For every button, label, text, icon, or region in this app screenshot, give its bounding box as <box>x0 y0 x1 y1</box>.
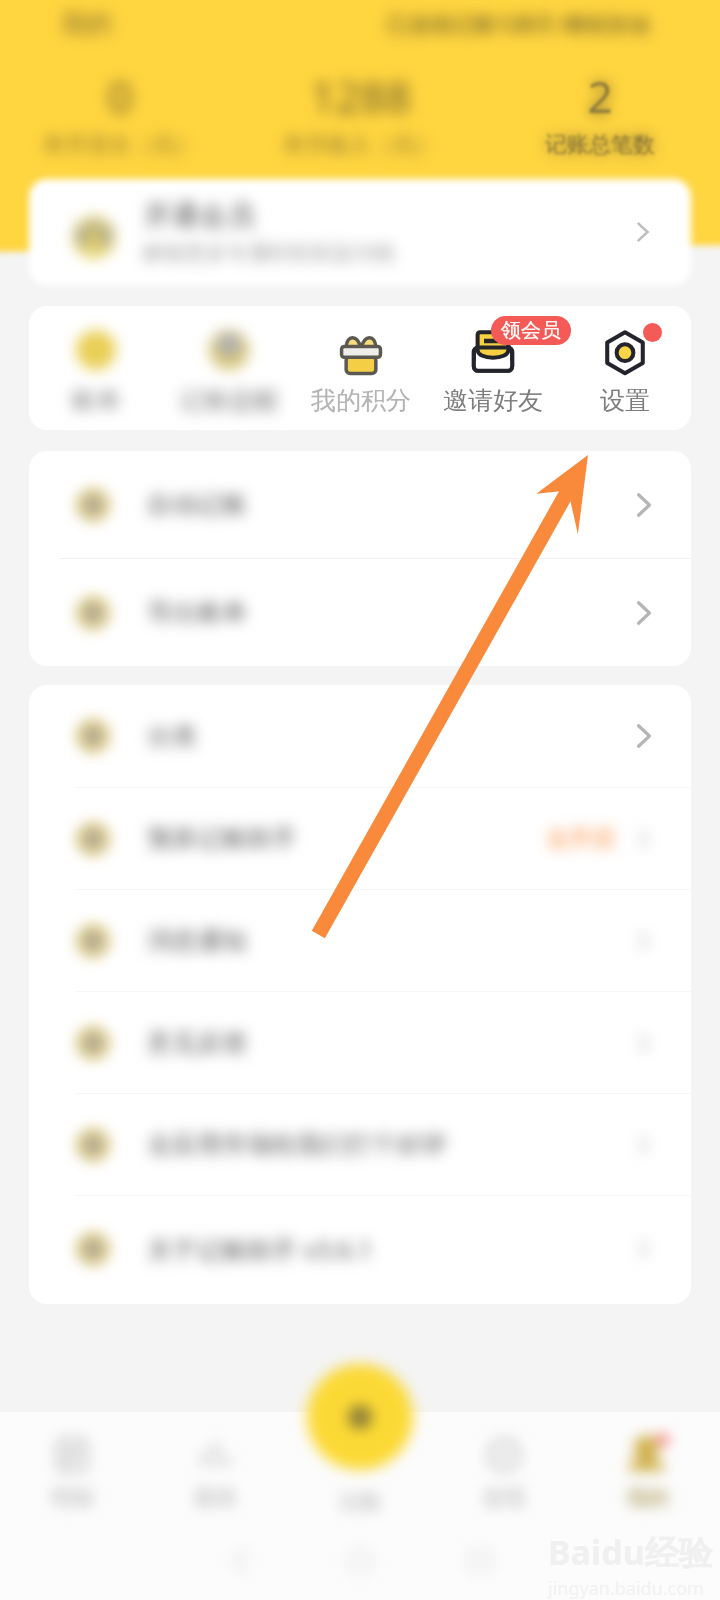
staticText: 明细 <box>51 1485 93 1511</box>
staticText: 2 <box>587 66 613 126</box>
button[interactable]: 我的 <box>576 1424 720 1511</box>
staticText: 领会员 <box>501 318 561 343</box>
staticText: 记账总笔数 <box>545 131 655 159</box>
staticText: Baidu经验 <box>548 1529 713 1575</box>
staticText: 0 <box>107 66 133 126</box>
staticText: 自动记账 <box>147 489 247 520</box>
staticText: 本月支出（元） <box>43 131 197 159</box>
button[interactable]: 消息通知 <box>29 890 691 991</box>
staticText: 去应用市场给我们打个好评 <box>147 1129 447 1160</box>
staticText: 记账提醒 <box>179 385 279 416</box>
staticText: 开通会员 <box>143 198 255 233</box>
button[interactable]: 预算记账助手 <box>29 788 691 889</box>
button[interactable]: 明细 <box>0 1424 144 1511</box>
button[interactable]: 图表 <box>144 1424 288 1511</box>
button[interactable]: 自动记账 <box>29 451 691 558</box>
staticText: 关于记账助手 v3.6.1 <box>147 1232 373 1266</box>
staticText: 发现 <box>483 1485 525 1511</box>
button[interactable]: 意见反馈 <box>29 992 691 1093</box>
button[interactable]: 关于记账助手 v3.6.1 <box>29 1196 691 1302</box>
staticText: 本月收入（元） <box>283 131 437 159</box>
staticText: 导出账单 <box>147 597 247 628</box>
staticText: 记账总笔数 <box>545 131 655 159</box>
staticText: 1288 <box>310 66 411 126</box>
button[interactable]: 我的积分 <box>295 306 427 430</box>
staticText: 去开启 <box>546 824 615 853</box>
staticText: 图表 <box>195 1485 237 1511</box>
staticText: 我的 <box>62 8 112 39</box>
button[interactable]: 邀请好友 <box>427 306 559 430</box>
staticText: 解锁更多专属特权权益功能 <box>143 240 395 266</box>
button[interactable]: 分类 <box>29 685 691 787</box>
staticText: 分类 <box>147 721 197 752</box>
button[interactable]: 去应用市场给我们打个好评 <box>29 1094 691 1195</box>
button[interactable]: 开通会员 <box>29 179 691 285</box>
button[interactable]: 发现 <box>432 1424 576 1511</box>
staticText: 消息通知 <box>147 925 247 956</box>
staticText: jingyan.baidu.com <box>548 1576 704 1600</box>
staticText: 预算记账助手 <box>147 823 297 854</box>
staticText: 邀请好友 <box>443 385 543 416</box>
staticText: 账单 <box>71 385 121 416</box>
staticText: 已连续记账128天·继续加油 <box>386 8 650 38</box>
staticText: 设置 <box>600 385 650 416</box>
button[interactable]: 设置 <box>559 306 691 430</box>
button[interactable]: 记一笔 <box>304 1361 416 1473</box>
staticText: 我的 <box>627 1485 669 1511</box>
staticText: 记账 <box>339 1489 381 1515</box>
button[interactable]: 记账提醒 <box>162 306 295 430</box>
staticText: 意见反馈 <box>147 1027 247 1058</box>
button[interactable]: 账单 <box>29 306 162 430</box>
staticText: 我的积分 <box>311 385 411 416</box>
staticText: 2 <box>587 66 613 126</box>
button[interactable]: 导出账单 <box>29 559 691 666</box>
